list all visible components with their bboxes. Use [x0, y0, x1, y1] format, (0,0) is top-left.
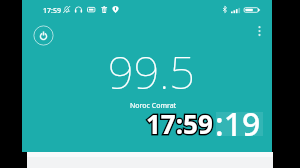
staticText: 17:59 — [43, 6, 61, 16]
staticText: 17:59 — [146, 106, 213, 141]
staticText: 17:59 — [146, 106, 213, 141]
staticText: :19 — [215, 102, 261, 146]
staticText: 99.5 — [108, 41, 195, 102]
staticText: Noroc Comrat — [130, 101, 177, 111]
button[interactable]: More options — [244, 13, 274, 48]
button[interactable]: Power — [25, 17, 61, 53]
